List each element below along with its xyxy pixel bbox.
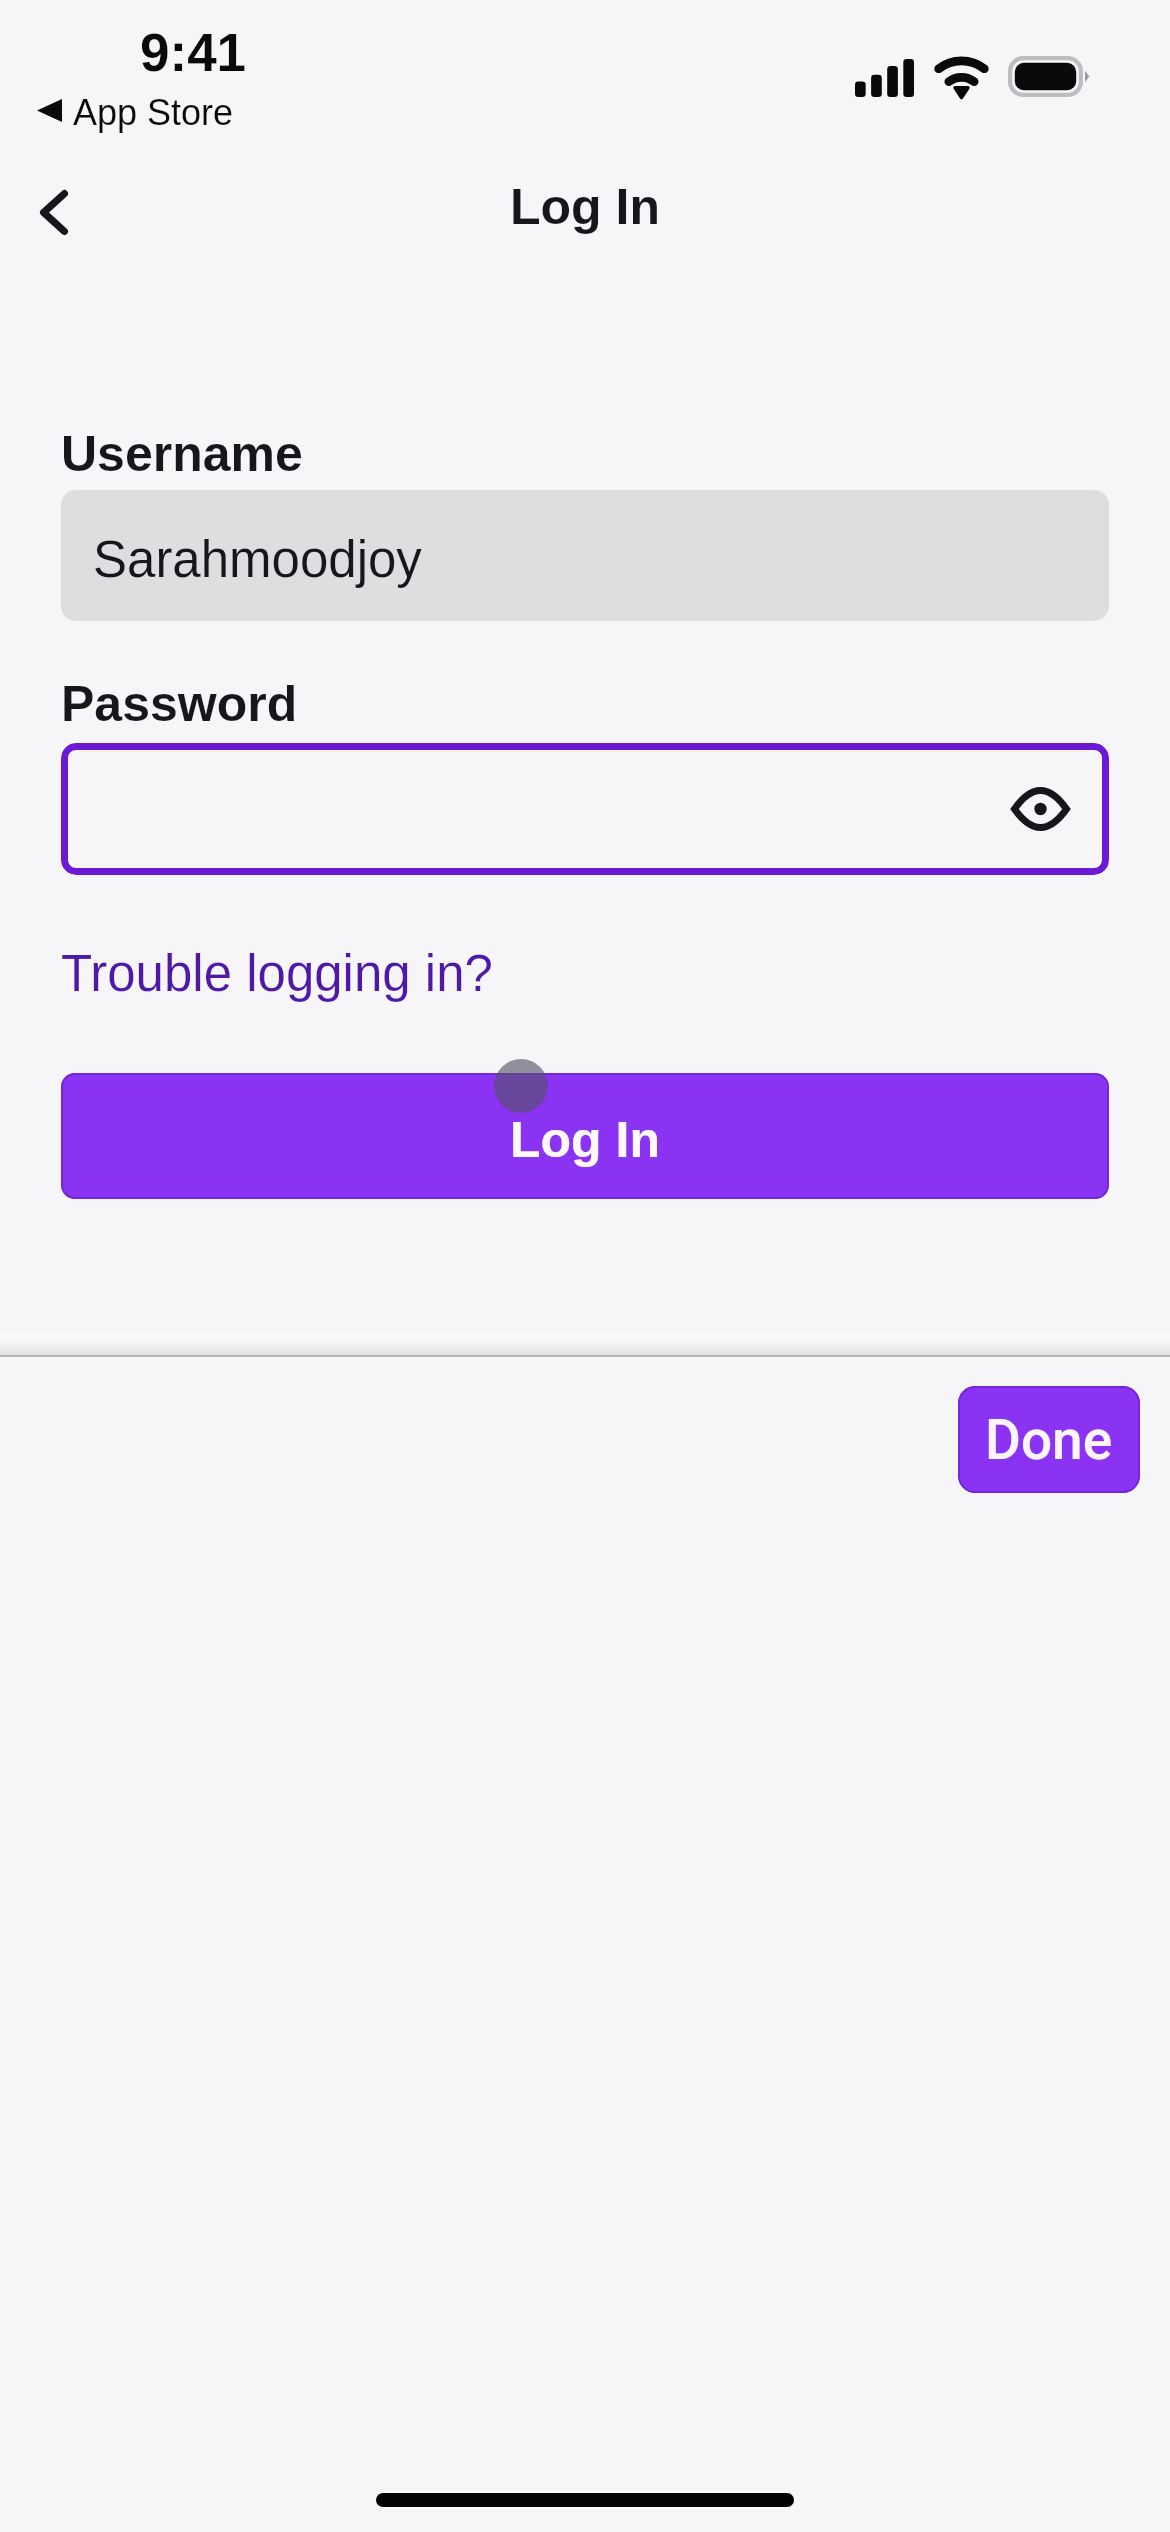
staticText: App Store bbox=[73, 92, 234, 132]
staticText: Done bbox=[985, 1408, 1113, 1472]
button[interactable]: Show password bbox=[999, 768, 1081, 850]
button[interactable]: Log In bbox=[61, 1073, 1109, 1199]
staticText: Sarahmoodjoy bbox=[93, 531, 422, 588]
button[interactable]: Sarahmoodjoy bbox=[61, 490, 1109, 621]
button[interactable]: Back bbox=[6, 178, 100, 246]
staticText: Username bbox=[61, 426, 303, 482]
button[interactable]: Trouble logging in? bbox=[61, 945, 493, 1002]
button[interactable]: Show password bbox=[61, 743, 1109, 875]
staticText: Log In bbox=[510, 1112, 660, 1168]
staticText: Password bbox=[61, 676, 298, 732]
staticText: 9:41 bbox=[140, 23, 247, 82]
staticText: Log In bbox=[0, 179, 1170, 235]
button[interactable]: Done bbox=[958, 1386, 1140, 1493]
